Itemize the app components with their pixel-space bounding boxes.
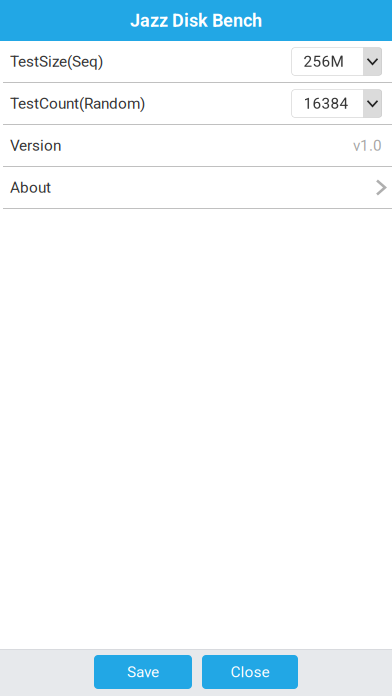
staticText: Jazz Disk Bench bbox=[130, 10, 262, 31]
staticText: TestSize(Seq) bbox=[10, 52, 103, 70]
button[interactable]: About bbox=[0, 167, 392, 208]
button[interactable]: Close bbox=[202, 655, 298, 689]
staticText: About bbox=[10, 178, 51, 196]
staticText: v1.0 bbox=[353, 136, 382, 154]
button[interactable]: Test count, random bbox=[291, 89, 382, 117]
staticText: 256M bbox=[303, 52, 343, 70]
button[interactable]: Test size, sequential bbox=[291, 47, 382, 75]
staticText: 16384 bbox=[303, 94, 348, 112]
staticText: Version bbox=[10, 136, 61, 154]
staticText: Close bbox=[230, 663, 269, 681]
staticText: Save bbox=[127, 663, 159, 681]
staticText: TestCount(Random) bbox=[10, 94, 145, 112]
button[interactable]: Save bbox=[94, 655, 192, 689]
